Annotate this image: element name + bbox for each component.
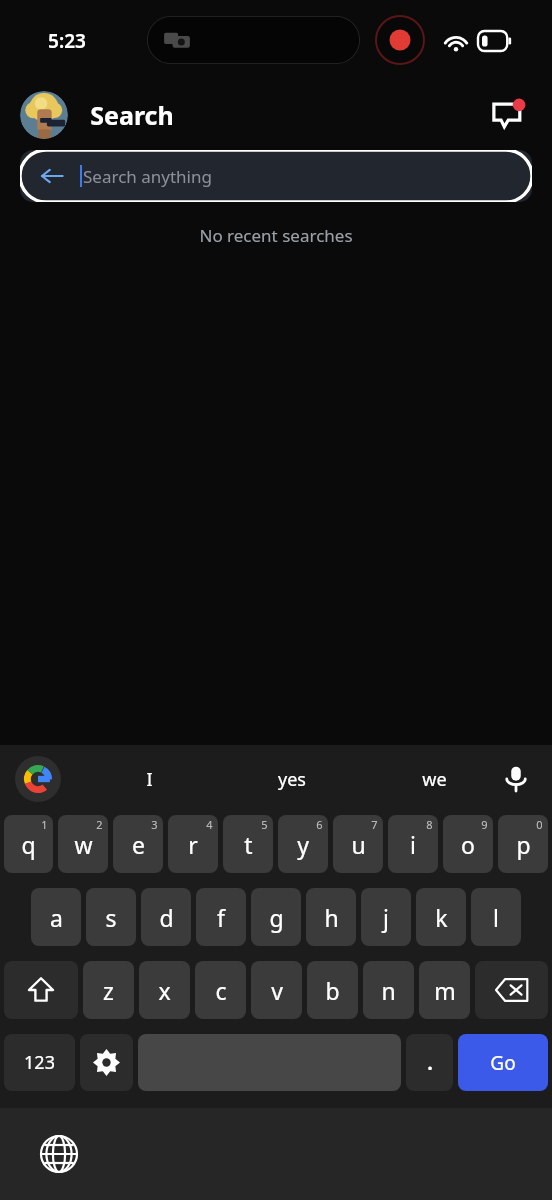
staticText: e bbox=[132, 829, 145, 860]
staticText: 0 bbox=[536, 817, 543, 832]
button[interactable]: t bbox=[223, 815, 273, 873]
staticText: b bbox=[325, 975, 340, 1006]
staticText: p bbox=[516, 829, 531, 860]
staticText: 1 bbox=[41, 817, 48, 832]
staticText: z bbox=[103, 975, 114, 1006]
staticText: q bbox=[21, 829, 36, 860]
button[interactable]: we bbox=[396, 754, 472, 804]
staticText: 8 bbox=[426, 817, 433, 832]
staticText: n bbox=[381, 975, 396, 1006]
button[interactable]: Backspace bbox=[475, 961, 548, 1019]
staticText: m bbox=[434, 975, 456, 1006]
staticText: i bbox=[410, 829, 416, 860]
button[interactable]: a bbox=[31, 888, 81, 946]
staticText: u bbox=[351, 829, 366, 860]
button[interactable]: o bbox=[443, 815, 493, 873]
button[interactable]: x bbox=[139, 961, 190, 1019]
staticText: c bbox=[215, 975, 227, 1006]
button[interactable]: f bbox=[196, 888, 246, 946]
staticText: No recent searches bbox=[199, 224, 353, 247]
staticText: l bbox=[493, 902, 499, 933]
staticText: 6 bbox=[316, 817, 323, 832]
button[interactable]: j bbox=[361, 888, 411, 946]
button[interactable]: c bbox=[195, 961, 246, 1019]
staticText: t bbox=[244, 829, 253, 860]
button[interactable]: r bbox=[168, 815, 218, 873]
button[interactable]: Google bbox=[15, 756, 61, 802]
staticText: 5:23 bbox=[48, 28, 86, 54]
staticText: x bbox=[158, 975, 171, 1006]
staticText: . bbox=[427, 1049, 433, 1076]
button[interactable]: d bbox=[141, 888, 191, 946]
staticText: h bbox=[324, 902, 339, 933]
button[interactable]: Go bbox=[458, 1034, 548, 1091]
staticText: f bbox=[217, 902, 225, 933]
button[interactable]: m bbox=[419, 961, 470, 1019]
button[interactable]: 123 bbox=[4, 1034, 75, 1091]
button[interactable]: z bbox=[83, 961, 134, 1019]
staticText: Search bbox=[90, 98, 174, 132]
staticText: 7 bbox=[371, 817, 378, 832]
staticText: o bbox=[461, 829, 475, 860]
button[interactable]: Profile bbox=[20, 91, 68, 139]
button[interactable]: k bbox=[416, 888, 466, 946]
staticText: 3 bbox=[151, 817, 158, 832]
staticText: a bbox=[50, 902, 63, 933]
button[interactable]: s bbox=[86, 888, 136, 946]
button[interactable]: v bbox=[251, 961, 302, 1019]
button[interactable]: q bbox=[4, 815, 53, 873]
staticText: j bbox=[383, 902, 389, 933]
button[interactable]: Voice input bbox=[494, 757, 538, 801]
button[interactable]: yes bbox=[253, 754, 331, 804]
staticText: 2 bbox=[96, 817, 103, 832]
button[interactable]: g bbox=[251, 888, 301, 946]
button[interactable]: i bbox=[388, 815, 438, 873]
staticText: w bbox=[74, 829, 93, 860]
button[interactable]: Back bbox=[38, 162, 66, 190]
button[interactable]: I bbox=[118, 754, 180, 804]
button[interactable]: u bbox=[333, 815, 383, 873]
staticText: v bbox=[271, 975, 283, 1006]
staticText: 4 bbox=[206, 817, 213, 832]
button[interactable]: n bbox=[363, 961, 414, 1019]
button[interactable]: h bbox=[306, 888, 356, 946]
button[interactable]: e bbox=[113, 815, 163, 873]
button[interactable]: Settings bbox=[80, 1034, 133, 1091]
staticText: 9 bbox=[481, 817, 488, 832]
staticText: d bbox=[159, 902, 174, 933]
button[interactable]: Change language bbox=[36, 1131, 82, 1177]
staticText: 5 bbox=[261, 817, 268, 832]
staticText: I bbox=[146, 767, 153, 792]
staticText: 123 bbox=[24, 1050, 55, 1075]
staticText: y bbox=[297, 829, 309, 860]
button[interactable]: Back bbox=[20, 150, 532, 202]
staticText: we bbox=[422, 767, 447, 792]
staticText: r bbox=[188, 829, 198, 860]
button[interactable]: y bbox=[278, 815, 328, 873]
button[interactable]: b bbox=[307, 961, 358, 1019]
staticText: yes bbox=[278, 767, 306, 792]
button[interactable]: Messages bbox=[486, 92, 532, 138]
staticText: Search anything bbox=[83, 165, 212, 188]
staticText: Go bbox=[490, 1050, 516, 1076]
button[interactable]: . bbox=[406, 1034, 453, 1091]
staticText: s bbox=[105, 902, 117, 933]
button[interactable]: Shift bbox=[4, 961, 78, 1019]
staticText: k bbox=[435, 902, 448, 933]
staticText: g bbox=[269, 902, 284, 933]
button[interactable]: w bbox=[58, 815, 108, 873]
button[interactable]: l bbox=[471, 888, 521, 946]
button[interactable]: p bbox=[498, 815, 548, 873]
